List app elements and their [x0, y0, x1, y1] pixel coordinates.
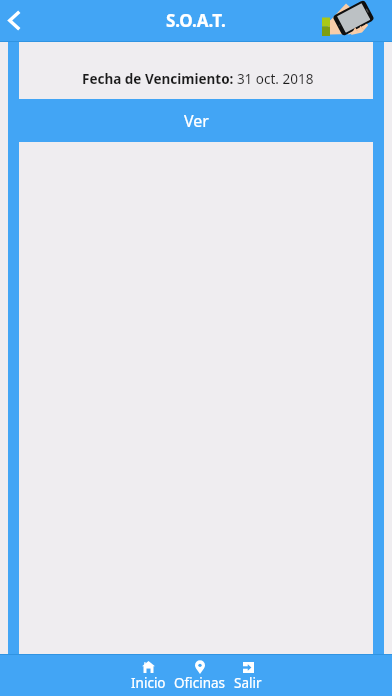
- staticText: Oficinas: [174, 674, 226, 692]
- button[interactable]: App logo: [322, 0, 378, 41]
- button[interactable]: Oficinas: [170, 655, 229, 696]
- button[interactable]: Fecha de Vencimiento: 31 oct. 2018: [19, 42, 373, 99]
- staticText: S.O.A.T.: [166, 9, 226, 32]
- staticText: Ver: [184, 110, 209, 132]
- staticText: Inicio: [131, 674, 166, 692]
- staticText: Salir: [234, 674, 262, 692]
- button[interactable]: Back: [0, 0, 28, 41]
- button[interactable]: Ver: [8, 99, 384, 142]
- staticText: Fecha de Vencimiento: 31 oct. 2018: [82, 70, 314, 88]
- button[interactable]: Salir: [229, 655, 267, 696]
- button[interactable]: Inicio: [126, 655, 170, 696]
